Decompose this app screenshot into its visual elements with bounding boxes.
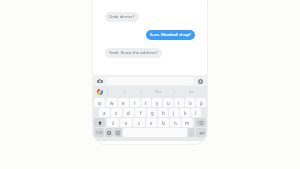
staticText: y	[156, 100, 159, 106]
button[interactable]: Camera	[96, 77, 104, 85]
button[interactable]: Im	[175, 86, 207, 97]
button[interactable]: a	[99, 108, 110, 117]
button[interactable]: m	[182, 118, 193, 127]
button[interactable]: Send	[196, 77, 204, 85]
staticText: .	[191, 130, 193, 136]
staticText: m	[185, 120, 190, 126]
button[interactable]: Grab dinner?	[105, 12, 139, 22]
button[interactable]: Numbers and symbols	[94, 128, 104, 137]
staticText: u	[167, 100, 170, 106]
button[interactable]: q	[94, 98, 105, 107]
button[interactable]: t	[141, 98, 151, 107]
staticText: Im	[189, 89, 194, 94]
button[interactable]: Backspace	[195, 118, 206, 127]
button[interactable]: z	[107, 118, 119, 127]
staticText: Yeah. Know the address?	[109, 50, 158, 56]
staticText: i	[178, 100, 180, 106]
staticText: x	[125, 120, 128, 126]
staticText: d	[127, 110, 130, 116]
button[interactable]: r	[130, 98, 140, 107]
staticText: v	[150, 120, 153, 126]
button[interactable]: u	[163, 98, 173, 107]
button[interactable]: b	[158, 118, 169, 127]
staticText: Sure. Meatball shop?	[150, 32, 191, 38]
button[interactable]: x	[120, 118, 132, 127]
button[interactable]: .	[188, 128, 195, 137]
staticText: I	[124, 89, 126, 94]
staticText: w	[110, 100, 114, 106]
staticText: c	[138, 120, 141, 126]
button[interactable]: i	[174, 98, 184, 107]
staticText: ?123	[96, 131, 103, 135]
button[interactable]: p	[196, 98, 206, 107]
staticText: a	[103, 110, 106, 116]
button[interactable]: y	[152, 98, 162, 107]
staticText: The	[155, 89, 162, 94]
staticText: t	[145, 100, 147, 106]
button[interactable]: s	[111, 108, 122, 117]
button[interactable]: c	[133, 118, 145, 127]
button[interactable]: j	[169, 108, 179, 117]
button[interactable]: d	[123, 108, 134, 117]
staticText: g	[151, 110, 154, 116]
staticText: o	[189, 100, 192, 106]
button[interactable]: f	[135, 108, 146, 117]
staticText: h	[162, 110, 165, 116]
button[interactable]: The	[142, 86, 174, 97]
button[interactable]: v	[146, 118, 157, 127]
staticText: q	[98, 100, 101, 106]
button[interactable]: Emoji	[114, 128, 122, 137]
button[interactable]: w	[106, 98, 117, 107]
staticText: n	[174, 120, 177, 126]
button[interactable]: Google	[93, 86, 107, 97]
button[interactable]: k	[180, 108, 190, 117]
button[interactable]: Change language	[105, 128, 113, 137]
staticText: p	[200, 100, 203, 106]
staticText: b	[162, 120, 165, 126]
button[interactable]: n	[170, 118, 181, 127]
button[interactable]: Shift	[94, 118, 105, 127]
staticText: j	[173, 110, 175, 116]
button[interactable]: h	[158, 108, 168, 117]
button[interactable]: e	[118, 98, 129, 107]
staticText: z	[112, 120, 115, 126]
staticText: e	[122, 100, 125, 106]
button[interactable]: o	[185, 98, 195, 107]
staticText: r	[134, 100, 136, 106]
button[interactable]: Yeah. Know the address?	[105, 48, 162, 58]
button[interactable]: Enter	[196, 128, 206, 137]
staticText: l	[195, 110, 197, 116]
button[interactable]: g	[147, 108, 157, 117]
button[interactable]: Sure. Meatball shop?	[146, 30, 195, 40]
button[interactable]: l	[191, 108, 201, 117]
staticText: k	[184, 110, 187, 116]
staticText: Grab dinner?	[109, 14, 135, 20]
staticText: f	[140, 110, 142, 116]
staticText: s	[115, 110, 118, 116]
